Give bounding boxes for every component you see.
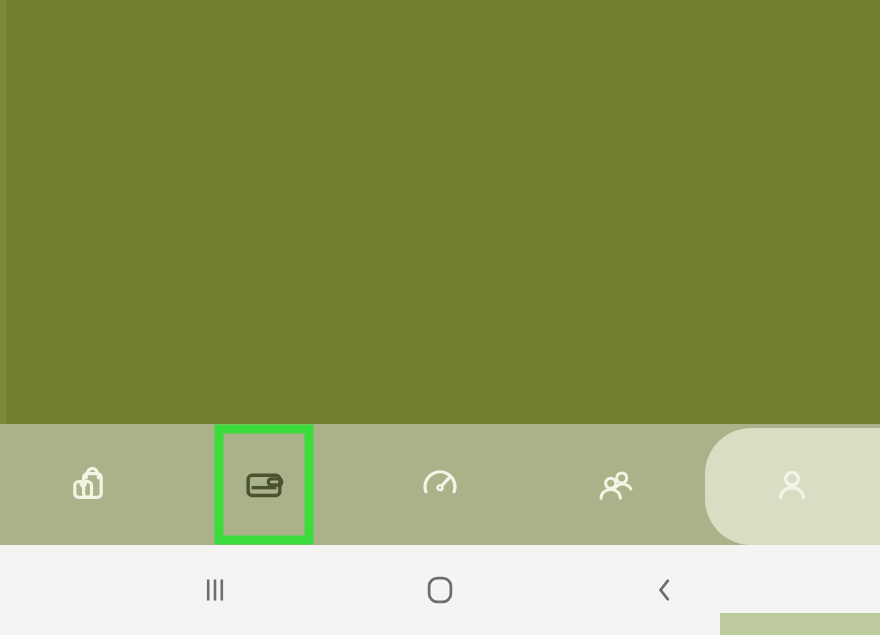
button[interactable] bbox=[216, 426, 312, 543]
button[interactable]: Wallet bbox=[176, 424, 352, 545]
button[interactable]: Profile bbox=[704, 424, 880, 545]
button[interactable]: Offers bbox=[0, 424, 176, 545]
button[interactable]: Activity bbox=[352, 424, 528, 545]
button[interactable]: Contacts bbox=[528, 424, 704, 545]
button[interactable]: Back bbox=[600, 545, 730, 635]
button[interactable]: Home bbox=[375, 545, 505, 635]
button[interactable]: Recents bbox=[150, 545, 280, 635]
